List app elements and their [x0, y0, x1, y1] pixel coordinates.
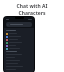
button[interactable] [6, 32, 32, 35]
button[interactable] [6, 53, 32, 56]
button[interactable] [6, 56, 32, 59]
button[interactable] [6, 59, 32, 62]
button[interactable] [6, 38, 32, 41]
button[interactable] [6, 68, 32, 71]
button[interactable] [6, 62, 32, 65]
button[interactable] [6, 50, 32, 53]
button[interactable]: Search characters [6, 22, 32, 27]
button[interactable] [6, 35, 32, 38]
staticText: Chat with AI Characters [3, 3, 61, 16]
button[interactable] [6, 41, 32, 44]
button[interactable] [6, 47, 32, 50]
button[interactable] [6, 29, 32, 32]
button[interactable] [6, 44, 32, 47]
button[interactable] [6, 65, 32, 68]
